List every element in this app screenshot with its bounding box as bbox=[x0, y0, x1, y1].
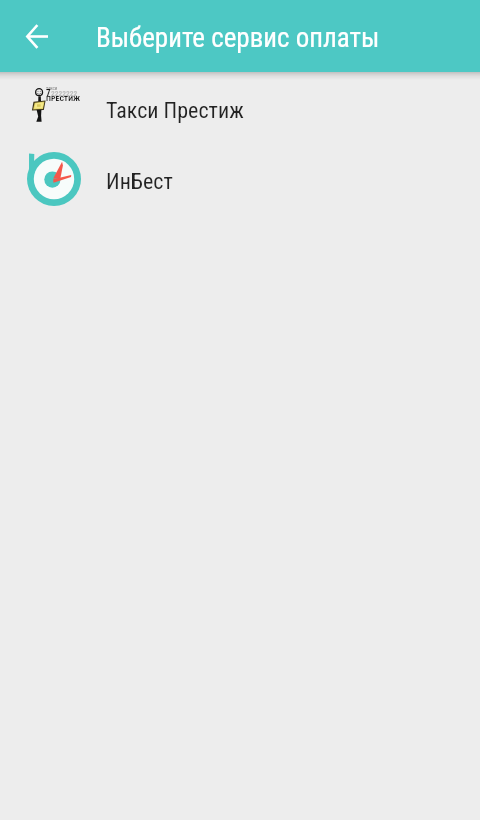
button[interactable]: ТАКСИ bbox=[0, 76, 480, 144]
staticText: ПРЕСТИЖ bbox=[46, 94, 81, 103]
button[interactable]: ИнБест bbox=[0, 144, 480, 212]
staticText: 7 bbox=[46, 88, 51, 99]
staticText: Такси Престиж bbox=[106, 98, 244, 124]
staticText: ТАКСИ bbox=[46, 86, 58, 91]
staticText: 2222222 bbox=[51, 89, 78, 98]
button[interactable]: Back bbox=[13, 12, 61, 60]
staticText: Выберите сервис оплаты bbox=[96, 22, 380, 54]
staticText: ИнБест bbox=[106, 169, 173, 195]
